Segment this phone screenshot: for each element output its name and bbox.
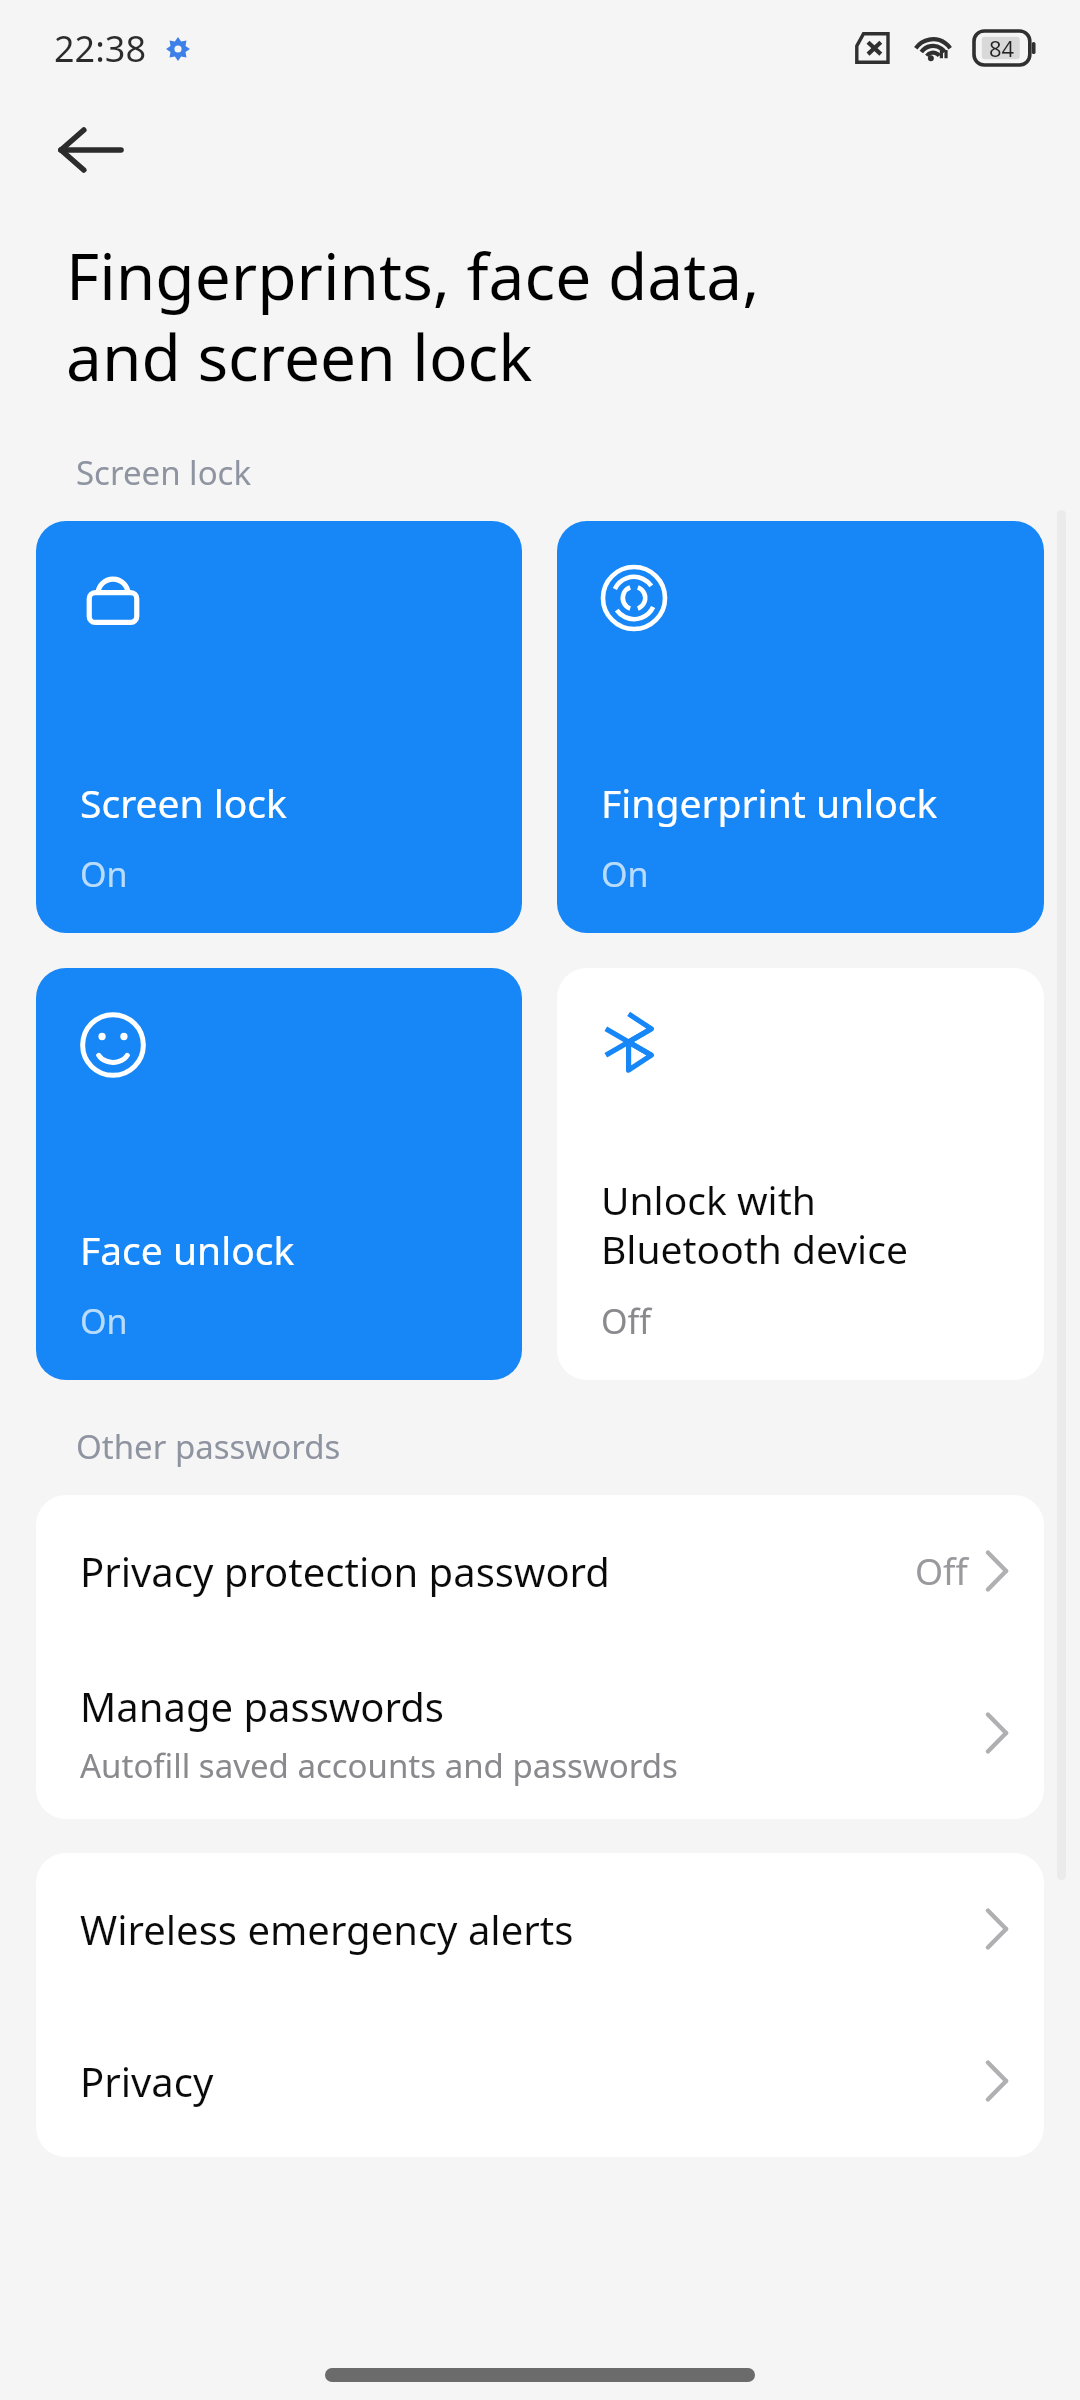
button[interactable]: Wireless emergency alerts [36,1853,1044,2005]
staticText: Fingerprint unlock [601,776,938,829]
staticText: On [80,851,128,897]
staticText: Off [915,1547,968,1596]
staticText: On [601,851,649,897]
button[interactable]: Face unlock [36,968,522,1380]
staticText: Privacy [80,2054,214,2108]
staticText: 22:38 [54,24,147,73]
staticText: Autofill saved accounts and passwords [80,1743,678,1788]
button[interactable]: Manage passwords [36,1647,1044,1819]
button[interactable]: Privacy [36,2005,1044,2157]
staticText: Unlock with Bluetooth device [601,1173,908,1276]
button[interactable]: Privacy protection password [36,1495,1044,1647]
button[interactable]: Unlock with Bluetooth device [557,968,1044,1380]
staticText: Screen lock [76,450,252,495]
staticText: Other passwords [76,1424,341,1469]
button[interactable]: Back [36,96,144,204]
staticText: Manage passwords [80,1679,444,1733]
staticText: Off [601,1298,651,1344]
staticText: 84 [989,33,1015,63]
staticText: Privacy protection password [80,1544,610,1598]
button[interactable]: Fingerprint unlock [557,521,1044,933]
staticText: Wireless emergency alerts [80,1902,574,1956]
staticText: Screen lock [80,776,287,829]
staticText: Fingerprints, face data, and screen lock [66,232,760,400]
staticText: On [80,1298,128,1344]
button[interactable]: Screen lock [36,521,522,933]
staticText: Face unlock [80,1223,295,1276]
